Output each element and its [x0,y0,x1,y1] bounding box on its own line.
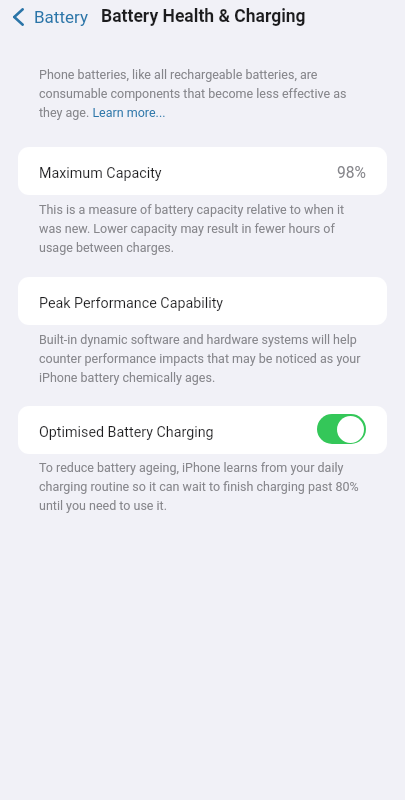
staticText: This is a measure of battery capacity re… [39,202,365,256]
staticText: To reduce battery ageing, iPhone learns … [39,460,365,514]
staticText: Optimised Battery Charging [39,424,214,441]
staticText: Maximum Capacity [39,165,162,182]
staticText: Peak Performance Capability [39,295,224,312]
staticText: Phone batteries, like all rechargeable b… [39,67,365,121]
staticText: Battery [34,7,88,27]
staticText: Built-in dynamic software and hardware s… [39,332,365,386]
button[interactable]: Peak Performance Capability [18,277,387,325]
button[interactable]: Optimised Battery Charging [18,406,387,454]
staticText: 98% [337,164,366,182]
button[interactable]: Optimised Battery Charging [317,414,366,444]
staticText: Battery Health & Charging [101,6,306,27]
button[interactable]: Maximum Capacity [18,147,387,195]
button[interactable]: Battery [0,3,96,31]
